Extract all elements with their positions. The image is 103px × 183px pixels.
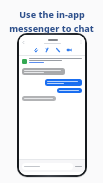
button[interactable] xyxy=(22,163,73,170)
button[interactable] xyxy=(45,79,82,86)
button[interactable]: Attach file xyxy=(33,47,39,53)
button[interactable]: Send xyxy=(75,164,82,169)
staticText: Use the in-app xyxy=(19,8,85,20)
button[interactable]: More options xyxy=(79,40,83,44)
button[interactable]: Back xyxy=(21,40,26,45)
button[interactable] xyxy=(22,68,65,75)
button[interactable] xyxy=(57,88,82,93)
button[interactable]: Send money xyxy=(44,47,50,53)
button[interactable]: Voice call xyxy=(55,47,61,53)
staticText: messenger to chat xyxy=(9,22,94,34)
button[interactable]: Video call xyxy=(66,47,72,53)
button[interactable] xyxy=(22,96,56,101)
